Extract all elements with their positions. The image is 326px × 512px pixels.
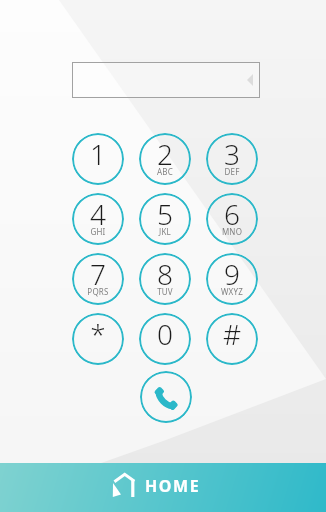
staticText: 0 xyxy=(139,315,191,353)
staticText: 2 xyxy=(139,135,191,173)
staticText: 8 xyxy=(139,255,191,293)
staticText: 9 xyxy=(206,255,258,293)
staticText: HOME xyxy=(145,475,201,497)
staticText: JKL xyxy=(139,226,191,237)
button[interactable]: HOME xyxy=(0,463,326,512)
button[interactable]: * xyxy=(72,313,124,365)
staticText: DEF xyxy=(206,166,258,177)
staticText: 7 xyxy=(72,255,124,293)
button[interactable]: 6 xyxy=(206,193,258,245)
staticText: 4 xyxy=(72,195,124,233)
button[interactable]: 4 xyxy=(72,193,124,245)
staticText: 6 xyxy=(206,195,258,233)
button[interactable]: 8 xyxy=(139,253,191,305)
button[interactable]: 9 xyxy=(206,253,258,305)
button[interactable]: 2 xyxy=(139,133,191,185)
staticText: * xyxy=(72,315,124,353)
staticText: 1 xyxy=(72,135,124,173)
staticText: 3 xyxy=(206,135,258,173)
other: Backspace xyxy=(247,74,253,86)
button[interactable]: 1 xyxy=(72,133,124,185)
staticText: ABC xyxy=(139,166,191,177)
staticText: MNO xyxy=(206,226,258,237)
button[interactable]: 5 xyxy=(139,193,191,245)
button[interactable]: 0 xyxy=(139,313,191,365)
staticText: # xyxy=(206,315,258,353)
staticText: TUV xyxy=(139,286,191,297)
staticText: WXYZ xyxy=(206,286,258,297)
button[interactable]: Call xyxy=(140,371,192,423)
staticText: GHI xyxy=(72,226,124,237)
staticText: 5 xyxy=(139,195,191,233)
button[interactable]: 3 xyxy=(206,133,258,185)
button[interactable]: Backspace xyxy=(72,62,260,98)
button[interactable]: 7 xyxy=(72,253,124,305)
staticText: PQRS xyxy=(72,286,124,297)
button[interactable]: # xyxy=(206,313,258,365)
